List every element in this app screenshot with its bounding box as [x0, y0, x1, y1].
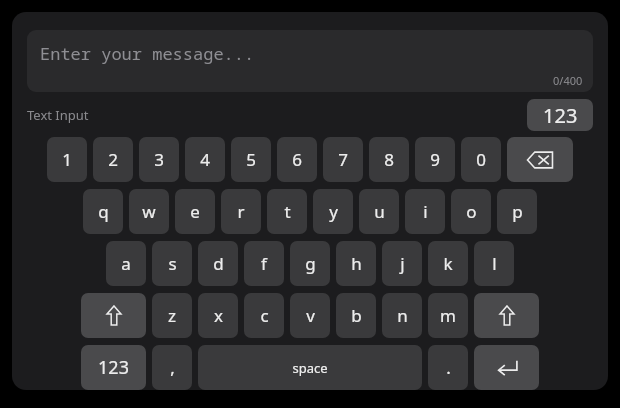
button[interactable]: w	[129, 189, 169, 234]
staticText: e	[190, 200, 200, 223]
staticText: 9	[430, 148, 440, 171]
button[interactable]: 1	[47, 137, 87, 182]
staticText: Enter your message...	[40, 42, 255, 65]
button[interactable]: d	[198, 241, 238, 286]
staticText: z	[168, 304, 176, 327]
button[interactable]: v	[290, 293, 330, 338]
button[interactable]: 6	[277, 137, 317, 182]
staticText: k	[443, 252, 453, 275]
button[interactable]: space	[198, 345, 422, 390]
button[interactable]: u	[359, 189, 399, 234]
button[interactable]: o	[451, 189, 491, 234]
button[interactable]: m	[428, 293, 468, 338]
button[interactable]: ,	[152, 345, 192, 390]
button[interactable]: b	[336, 293, 376, 338]
button[interactable]: e	[175, 189, 215, 234]
staticText: u	[374, 200, 385, 223]
staticText: f	[261, 252, 267, 275]
staticText: y	[329, 200, 338, 223]
button[interactable]: Shift	[474, 293, 539, 338]
staticText: g	[305, 252, 316, 275]
button[interactable]: l	[474, 241, 514, 286]
staticText: p	[512, 200, 523, 223]
staticText: 4	[200, 148, 210, 171]
staticText: v	[306, 304, 315, 327]
button[interactable]: 123	[527, 99, 593, 131]
staticText: l	[492, 252, 497, 275]
staticText: 123	[98, 355, 129, 380]
staticText: 0	[476, 148, 486, 171]
staticText: 0/400	[553, 73, 583, 88]
button[interactable]: .	[428, 345, 468, 390]
button[interactable]: t	[267, 189, 307, 234]
button[interactable]: 2	[93, 137, 133, 182]
staticText: 1	[62, 148, 72, 171]
staticText: a	[121, 252, 131, 275]
button[interactable]: i	[405, 189, 445, 234]
button[interactable]: a	[106, 241, 146, 286]
staticText: 123	[543, 102, 578, 129]
staticText: b	[351, 304, 362, 327]
button[interactable]: z	[152, 293, 192, 338]
staticText: 7	[338, 148, 348, 171]
button[interactable]: r	[221, 189, 261, 234]
staticText: t	[284, 200, 291, 223]
button[interactable]: p	[497, 189, 537, 234]
button[interactable]: n	[382, 293, 422, 338]
button[interactable]: 123	[81, 345, 146, 390]
button[interactable]: j	[382, 241, 422, 286]
staticText: s	[168, 252, 177, 275]
staticText: Text Input	[27, 106, 89, 124]
button[interactable]: 7	[323, 137, 363, 182]
staticText: w	[142, 200, 156, 223]
button[interactable]: f	[244, 241, 284, 286]
staticText: r	[237, 200, 245, 223]
button[interactable]: Enter	[474, 345, 539, 390]
staticText: h	[351, 252, 362, 275]
button[interactable]: h	[336, 241, 376, 286]
staticText: j	[400, 252, 405, 275]
staticText: 5	[246, 148, 256, 171]
button[interactable]: g	[290, 241, 330, 286]
staticText: x	[214, 304, 223, 327]
button[interactable]: 4	[185, 137, 225, 182]
staticText: space	[292, 359, 328, 377]
button[interactable]: Enter your message...	[27, 30, 593, 92]
staticText: n	[397, 304, 408, 327]
button[interactable]: Shift	[81, 293, 146, 338]
staticText: q	[98, 200, 109, 223]
button[interactable]: Backspace	[507, 137, 573, 182]
button[interactable]: s	[152, 241, 192, 286]
staticText: 2	[108, 148, 118, 171]
button[interactable]: 3	[139, 137, 179, 182]
staticText: i	[423, 200, 428, 223]
staticText: m	[440, 304, 456, 327]
button[interactable]: 0	[461, 137, 501, 182]
staticText: c	[260, 304, 269, 327]
staticText: .	[446, 356, 451, 379]
button[interactable]: c	[244, 293, 284, 338]
button[interactable]: 8	[369, 137, 409, 182]
staticText: ,	[170, 356, 175, 379]
button[interactable]: q	[83, 189, 123, 234]
button[interactable]: k	[428, 241, 468, 286]
button[interactable]: y	[313, 189, 353, 234]
button[interactable]: x	[198, 293, 238, 338]
staticText: o	[466, 200, 477, 223]
staticText: d	[213, 252, 224, 275]
staticText: 8	[384, 148, 394, 171]
button[interactable]: 9	[415, 137, 455, 182]
staticText: 6	[292, 148, 302, 171]
staticText: 3	[154, 148, 164, 171]
button[interactable]: 5	[231, 137, 271, 182]
